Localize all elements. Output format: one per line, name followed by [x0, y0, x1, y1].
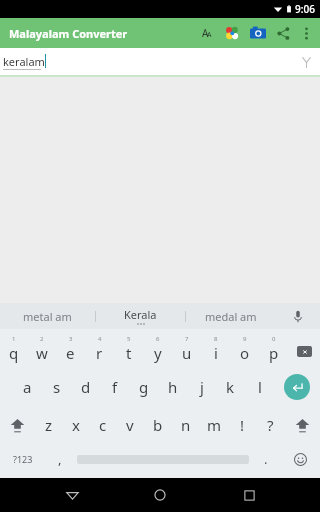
staticText: 5	[127, 335, 131, 343]
staticText: ?	[267, 415, 274, 435]
staticText: r	[96, 343, 103, 363]
button[interactable]: Shift	[0, 406, 35, 444]
staticText: ,	[58, 450, 62, 468]
staticText: 2	[40, 335, 44, 343]
button[interactable]: ,	[45, 444, 74, 474]
button[interactable]: metal am	[0, 303, 95, 329]
staticText: w	[36, 343, 48, 363]
button[interactable]: Back	[55, 478, 89, 512]
staticText: 4	[98, 335, 102, 343]
button[interactable]: h	[158, 368, 187, 406]
button[interactable]: z	[35, 406, 62, 444]
staticText: Malayalam Converter	[9, 26, 128, 41]
button[interactable]: Voice input	[298, 54, 314, 70]
button[interactable]: 0	[259, 330, 288, 368]
button[interactable]: 3	[56, 330, 85, 368]
staticText: !	[240, 415, 245, 435]
staticText: a	[23, 377, 32, 397]
button[interactable]: d	[71, 368, 100, 406]
staticText: v	[126, 415, 134, 435]
button[interactable]: Share	[273, 23, 293, 43]
button[interactable]: 8	[201, 330, 230, 368]
button[interactable]: c	[89, 406, 116, 444]
staticText: 3	[69, 335, 73, 343]
staticText: .	[264, 450, 268, 468]
button[interactable]: b	[144, 406, 172, 444]
button[interactable]: 5	[114, 330, 143, 368]
staticText: p	[269, 343, 279, 363]
staticText: 0	[272, 335, 276, 343]
staticText: j	[200, 377, 204, 397]
button[interactable]: x	[62, 406, 89, 444]
button[interactable]: Backspace	[288, 330, 320, 368]
staticText: s	[53, 377, 61, 397]
staticText: g	[139, 377, 149, 397]
button[interactable]: l	[245, 368, 274, 406]
button[interactable]: Home	[143, 478, 177, 512]
staticText: f	[112, 377, 118, 397]
button[interactable]: Text size	[194, 22, 216, 44]
staticText: medal am	[205, 309, 257, 324]
button[interactable]: Emoji	[280, 444, 320, 474]
button[interactable]: s	[42, 368, 71, 406]
staticText: A	[207, 30, 212, 40]
button[interactable]: Camera	[248, 23, 268, 43]
staticText: h	[168, 377, 178, 397]
button[interactable]: Shift	[284, 406, 320, 444]
staticText: b	[153, 415, 163, 435]
staticText: 1	[12, 335, 16, 343]
staticText: z	[45, 415, 53, 435]
staticText: A	[202, 26, 209, 40]
staticText: c	[99, 415, 107, 435]
staticText: keralam	[3, 54, 45, 69]
button[interactable]: 1	[0, 330, 28, 368]
button[interactable]: ?123	[0, 444, 45, 474]
button[interactable]: 2	[28, 330, 56, 368]
staticText: i	[214, 343, 218, 363]
button[interactable]: 7	[172, 330, 201, 368]
staticText: k	[226, 377, 235, 397]
button[interactable]: m	[200, 406, 228, 444]
staticText: 6	[156, 335, 160, 343]
button[interactable]: n	[172, 406, 200, 444]
staticText: l	[258, 377, 262, 397]
button[interactable]: k	[216, 368, 245, 406]
button[interactable]: v	[116, 406, 144, 444]
staticText: 9:06	[295, 2, 315, 16]
button[interactable]: f	[100, 368, 129, 406]
button[interactable]: Gallery	[222, 23, 242, 43]
button[interactable]: 4	[85, 330, 114, 368]
staticText: t	[126, 343, 132, 363]
staticText: ?123	[13, 453, 33, 465]
staticText: d	[81, 377, 91, 397]
staticText: 7	[185, 335, 189, 343]
button[interactable]: Recent apps	[232, 478, 266, 512]
staticText: x	[72, 415, 80, 435]
staticText: e	[66, 343, 75, 363]
staticText: u	[182, 343, 192, 363]
button[interactable]: !	[228, 406, 256, 444]
button[interactable]: 6	[143, 330, 172, 368]
staticText: Kerala	[124, 307, 157, 322]
button[interactable]: ?	[256, 406, 284, 444]
staticText: 8	[214, 335, 218, 343]
button[interactable]: g	[129, 368, 158, 406]
button[interactable]: j	[187, 368, 216, 406]
button[interactable]: Space	[74, 444, 251, 474]
button[interactable]: medal am	[186, 303, 275, 329]
staticText: n	[181, 415, 191, 435]
staticText: o	[240, 343, 250, 363]
button[interactable]: .	[251, 444, 280, 474]
button[interactable]: Kerala	[96, 303, 185, 329]
button[interactable]: 9	[230, 330, 259, 368]
staticText: metal am	[23, 309, 72, 324]
button[interactable]: More options	[295, 22, 317, 44]
staticText: q	[9, 343, 19, 363]
button[interactable]: Voice typing	[275, 303, 320, 329]
staticText: 9	[243, 335, 247, 343]
button[interactable]: a	[13, 368, 42, 406]
staticText: y	[154, 343, 162, 363]
staticText: m	[207, 415, 222, 435]
button[interactable]: Enter	[274, 368, 320, 406]
